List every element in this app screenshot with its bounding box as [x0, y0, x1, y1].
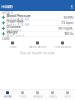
button[interactable]: Blood Pressure [0, 15, 75, 20]
button[interactable]: Home [0, 89, 15, 100]
button[interactable]: Medications [25, 41, 50, 50]
staticText: Home [4, 95, 11, 98]
staticText: Mon, Jun 3 [6, 34, 24, 38]
staticText: Visits [9, 45, 16, 49]
staticText: Weight [6, 30, 17, 34]
button[interactable]: Glucose [0, 26, 75, 31]
button[interactable]: Visits [0, 41, 25, 50]
staticText: Messages [32, 95, 42, 98]
button[interactable]: Weight [0, 31, 75, 37]
staticText: Blood Pressure [6, 13, 30, 18]
staticText: 98 mg/dL [58, 26, 73, 30]
button[interactable]: Messages [30, 89, 45, 100]
staticText: CARE [2, 37, 10, 41]
staticText: 120/80 [63, 15, 73, 19]
staticText: 72 bpm [61, 21, 73, 25]
staticText: VITALS [2, 11, 13, 15]
staticText: Glucose [6, 24, 20, 29]
staticText: Today 8:14 AM [6, 18, 29, 21]
staticText: 165 lb [64, 32, 73, 36]
button[interactable]: Account [70, 5, 74, 9]
button[interactable]: Test Results [50, 41, 75, 50]
staticText: Medications [29, 45, 46, 49]
button[interactable]: Visits [15, 89, 30, 100]
staticText: More [64, 95, 70, 98]
staticText: Today 8:14 AM [6, 23, 29, 27]
button[interactable]: More [60, 89, 75, 100]
staticText: Visits [19, 95, 26, 98]
staticText: Heart Rate [6, 19, 23, 23]
button[interactable]: Results [45, 89, 60, 100]
button[interactable]: See all health records [0, 50, 75, 57]
staticText: Health [1, 4, 12, 9]
staticText: Yesterday [6, 29, 21, 32]
staticText: Test Results [54, 45, 71, 49]
staticText: Results [48, 95, 56, 98]
button[interactable]: Heart Rate [0, 20, 75, 26]
staticText: See all health records [20, 51, 55, 55]
